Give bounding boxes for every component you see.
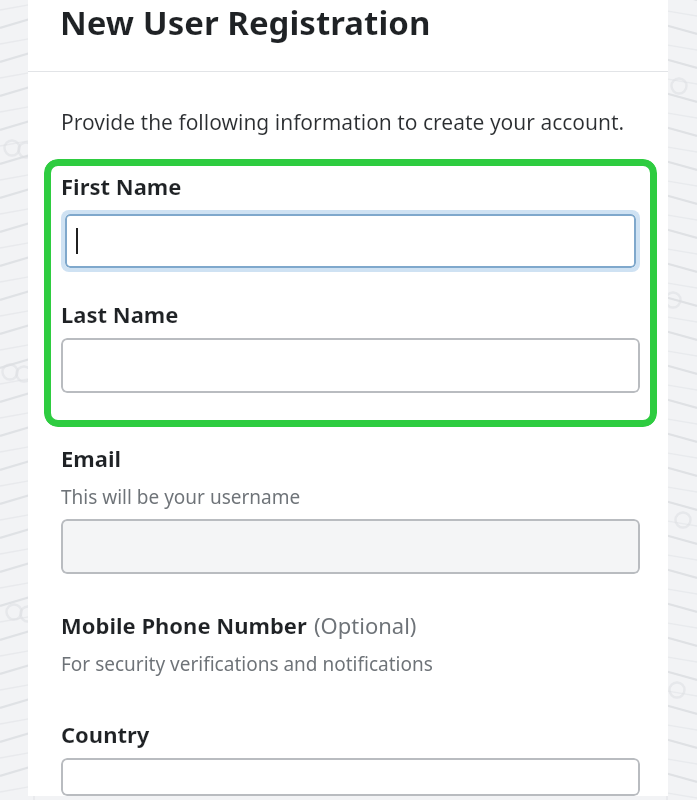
staticText: (Optional) (314, 610, 417, 640)
button[interactable]: Email input (61, 519, 640, 574)
staticText: First Name (61, 171, 182, 201)
staticText: Country (61, 719, 150, 749)
staticText: Email (61, 443, 122, 473)
staticText: Mobile Phone Number (61, 610, 307, 640)
button[interactable]: Country input (61, 758, 640, 796)
staticText: For security verifications and notificat… (61, 651, 433, 677)
staticText: Last Name (61, 299, 179, 329)
button[interactable]: First Name input (65, 214, 636, 268)
button[interactable]: Last Name input (61, 338, 640, 393)
staticText: New User Registration (60, 0, 431, 45)
staticText: Provide the following information to cre… (61, 108, 625, 137)
staticText: This will be your username (61, 484, 301, 510)
